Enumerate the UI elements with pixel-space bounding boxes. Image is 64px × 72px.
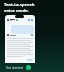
button[interactable]: Play: [26, 65, 31, 70]
staticText: voice mode.: [4, 8, 30, 14]
staticText: Text-to-speech: [4, 2, 35, 8]
button[interactable]: Get started: [6, 66, 23, 70]
staticText: Get started: [6, 66, 23, 70]
